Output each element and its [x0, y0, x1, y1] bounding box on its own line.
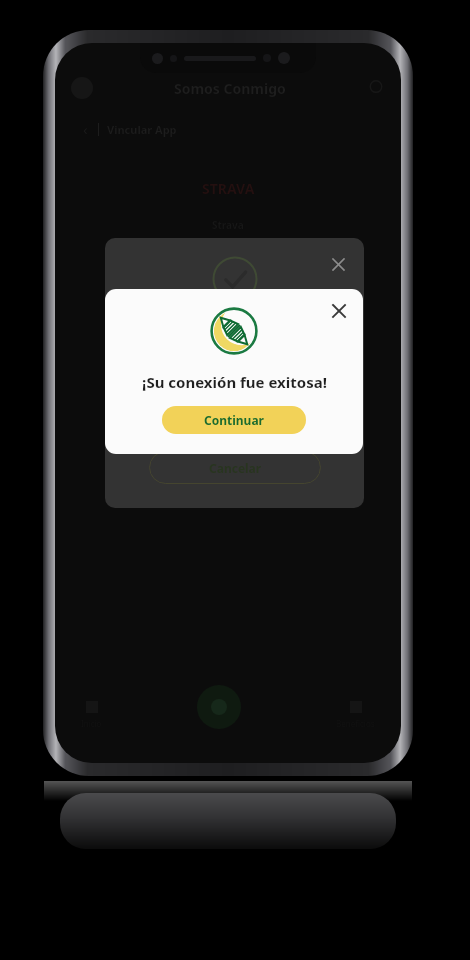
button[interactable]: Continuar: [162, 406, 306, 434]
staticText: ¡Su conexión fue exitosa!: [142, 372, 327, 392]
staticText: Continuar: [204, 412, 264, 428]
staticText: Somos Conmigo: [174, 79, 286, 98]
staticText: Vincular App: [107, 122, 177, 137]
staticText: Cancelar: [209, 460, 262, 476]
staticText: STRAVA: [202, 179, 255, 198]
staticText: Strava: [212, 218, 244, 232]
button[interactable]: Cerrar: [325, 251, 351, 277]
button[interactable]: Cancelar: [149, 451, 321, 484]
button[interactable]: Cerrar: [324, 296, 354, 326]
